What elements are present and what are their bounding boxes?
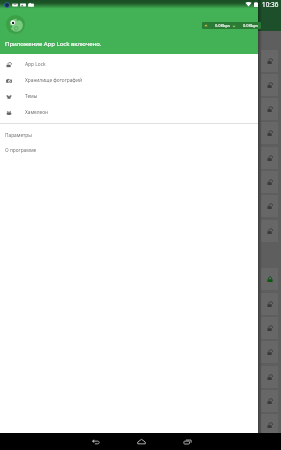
button[interactable]: Unlocked app: [261, 341, 278, 363]
button[interactable]: Home: [127, 433, 155, 450]
staticText: Параметры: [5, 132, 32, 139]
button[interactable]: Параметры: [0, 128, 258, 143]
button[interactable]: Unlocked app: [261, 390, 278, 412]
staticText: О программе: [5, 147, 37, 154]
button[interactable]: App Lock: [0, 56, 258, 72]
button[interactable]: Unlocked app: [261, 220, 278, 242]
button[interactable]: Locked app: [261, 268, 278, 290]
staticText: App Lock: [25, 61, 46, 68]
staticText: 10:36: [262, 0, 279, 9]
staticText: Хамелеон: [25, 109, 49, 116]
button[interactable]: Back: [81, 433, 109, 450]
button[interactable]: Recents: [173, 433, 201, 450]
staticText: Хранилище фотографий: [25, 77, 82, 84]
staticText: Темы: [25, 93, 38, 100]
button[interactable]: Хранилище фотографий: [0, 72, 258, 88]
button[interactable]: Unlocked app: [261, 366, 278, 388]
staticText: 0.0Kbps: [243, 23, 258, 28]
button[interactable]: Unlocked app: [261, 50, 278, 72]
button[interactable]: Unlocked app: [261, 317, 278, 339]
button[interactable]: Темы: [0, 88, 258, 104]
button[interactable]: Unlocked app: [261, 98, 278, 120]
button[interactable]: Unlocked app: [261, 195, 278, 217]
button[interactable]: О программе: [0, 143, 258, 158]
staticText: 0.0Kbps: [215, 23, 230, 28]
button[interactable]: Unlocked app: [261, 171, 278, 193]
button[interactable]: Хамелеон: [0, 104, 258, 120]
staticText: Приложение App Lock включено.: [5, 40, 102, 48]
button[interactable]: Unlocked app: [261, 147, 278, 169]
button[interactable]: Unlocked app: [261, 74, 278, 96]
button[interactable]: Unlocked app: [261, 122, 278, 144]
button[interactable]: Unlocked app: [261, 293, 278, 315]
button[interactable]: Unlocked app: [261, 414, 278, 436]
